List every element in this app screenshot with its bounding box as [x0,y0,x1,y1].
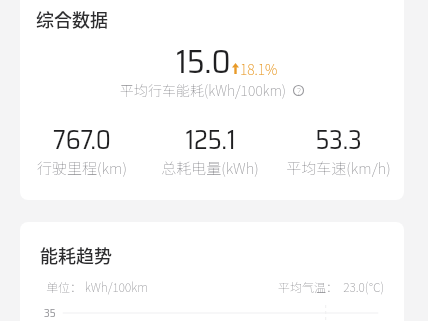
staticText: 平均车速(km/h) [286,157,391,179]
staticText: 综合数据 [36,6,108,32]
staticText: 767.0 [53,119,111,160]
staticText: 能耗趋势 [40,242,112,268]
staticText: 125.1 [185,119,236,160]
staticText: 行驶里程(km) [37,157,127,179]
button[interactable]: 说明 [293,85,304,96]
staticText: 单位： kWh/100km [46,278,148,295]
staticText: 18.1% [240,59,278,79]
staticText: 53.3 [315,119,362,160]
staticText: 平均气温： 23.0(℃) [278,278,384,295]
staticText: 平均行车能耗(kWh/100km) [120,80,287,100]
staticText: 35 [44,305,56,321]
staticText: ? [297,85,301,96]
staticText: 总耗电量(kWh) [161,157,259,179]
staticText: 15.0 [176,36,231,88]
